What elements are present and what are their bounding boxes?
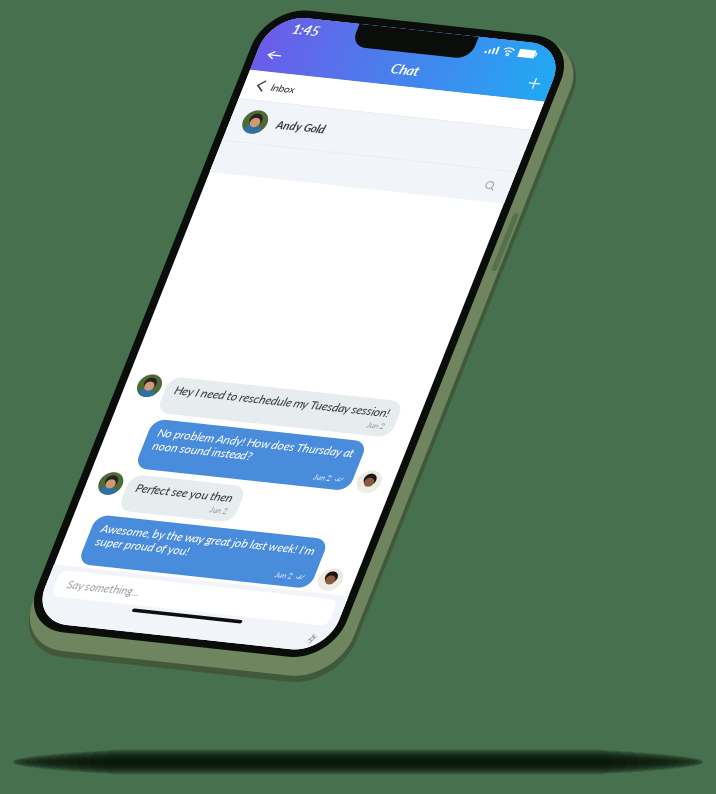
staticText: Hey I need to reschedule my Tuesday sess… <box>94 528 368 546</box>
staticText: Jun 2 <box>346 549 368 561</box>
staticText: Jun 2 <box>306 754 328 766</box>
staticText: Perfect see you then <box>94 659 217 677</box>
staticText: Jun 2 <box>306 623 328 635</box>
staticText: Chat <box>203 84 238 104</box>
button[interactable]: Inbox <box>31 116 406 154</box>
button[interactable]: Andy Gold <box>31 155 406 210</box>
staticText: Awesome, by the way great job last week!… <box>71 716 343 751</box>
button[interactable]: New conversation <box>364 78 406 110</box>
staticText: No problem Andy! How does Thursday at no… <box>94 585 343 620</box>
